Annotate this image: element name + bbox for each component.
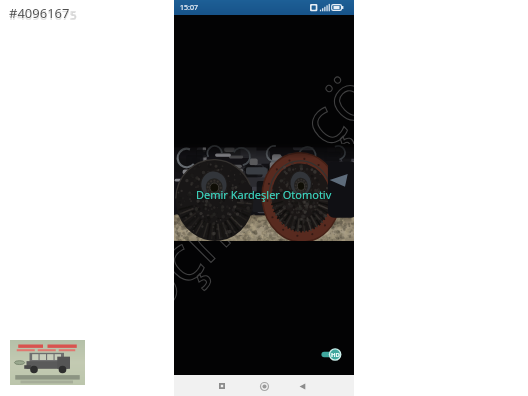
staticText: #4096167 (9, 4, 70, 22)
staticText: 5 (71, 9, 77, 21)
button[interactable]: Listing thumbnail (10, 340, 85, 385)
staticText: #40961675 (9, 6, 77, 24)
staticText: Demir Kardeşler Otomotiv (196, 187, 332, 202)
staticText: HD (331, 351, 340, 359)
button[interactable]: HD quality toggle (320, 347, 344, 362)
button[interactable]: Back (292, 376, 312, 396)
button[interactable]: Home (254, 376, 274, 396)
button[interactable]: Recents (212, 376, 232, 396)
staticText: 15:07 (180, 3, 198, 13)
